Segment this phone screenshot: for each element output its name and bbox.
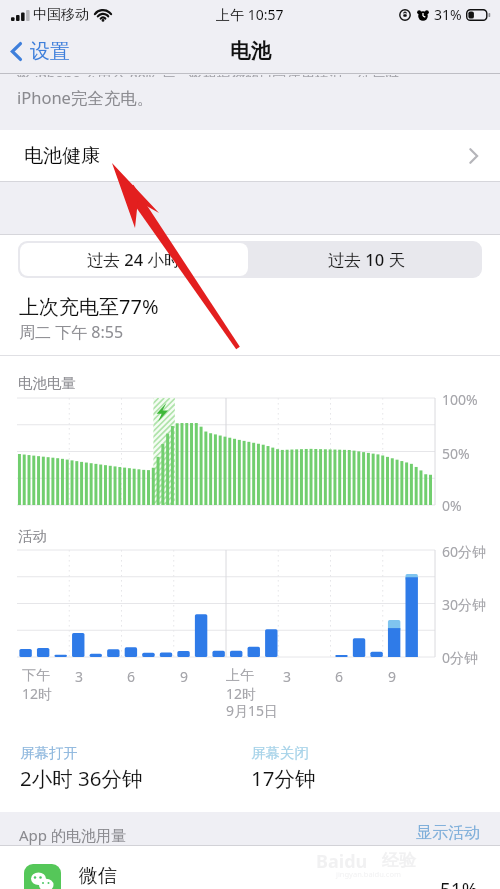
staticText: 9 [388, 667, 397, 686]
staticText: 上次充电至77% [19, 293, 159, 320]
staticText: 30分钟 [442, 595, 487, 614]
button[interactable]: 过去 10 天 [250, 241, 482, 278]
staticText: 50% [442, 444, 470, 463]
staticText: App 的电池用量 [19, 825, 126, 845]
staticText: 17分钟 [251, 764, 316, 792]
staticText: 12时 [226, 684, 257, 703]
staticText: 将 iPhone 充电至 80% 后，将根据您的日常使用情况，延后对 [17, 75, 399, 77]
staticText: 电池健康 [24, 144, 100, 168]
staticText: 51% [440, 877, 478, 889]
staticText: 0分钟 [442, 648, 479, 667]
staticText: 电池 [230, 38, 271, 64]
staticText: 屏幕关闭 [251, 744, 309, 762]
staticText: 31% [434, 5, 462, 24]
button[interactable]: 微信 [0, 846, 500, 889]
staticText: 3 [75, 667, 84, 686]
staticText: 2小时 36分钟 [20, 764, 143, 792]
staticText: 12时 [22, 684, 53, 703]
staticText: iPhone完全充电。 [17, 86, 154, 109]
button[interactable]: 显示活动 [416, 823, 480, 843]
staticText: 3 [283, 667, 292, 686]
button[interactable]: 返回设置 [7, 34, 74, 69]
staticText: 过去 24 小时 [87, 248, 181, 271]
staticText: 上午 [226, 667, 254, 685]
staticText: 设置 [30, 39, 70, 64]
staticText: 经验 [382, 850, 416, 871]
staticText: 9月15日 [226, 701, 279, 720]
staticText: 显示活动 [416, 823, 480, 843]
staticText: 0% [442, 496, 462, 515]
staticText: 6 [127, 667, 136, 686]
staticText: 屏幕打开 [20, 744, 78, 762]
staticText: 6 [335, 667, 344, 686]
staticText: 过去 10 天 [328, 248, 405, 271]
staticText: 电池电量 [18, 374, 76, 392]
staticText: 中国移动 [33, 6, 89, 24]
staticText: 60分钟 [442, 542, 487, 561]
staticText: 下午 [22, 667, 50, 685]
staticText: 活动 [18, 527, 47, 545]
staticText: 9 [180, 667, 189, 686]
staticText: 微信 [79, 864, 117, 888]
staticText: jingyan.baidu.com [336, 869, 401, 879]
button[interactable]: 电池健康 [0, 130, 500, 182]
staticText: Baidu [316, 849, 368, 874]
button[interactable]: 过去 24 小时 [20, 243, 248, 276]
staticText: 周二 下午 8:55 [19, 321, 124, 343]
staticText: 100% [442, 390, 478, 409]
staticText: 上午 10:57 [216, 5, 284, 24]
